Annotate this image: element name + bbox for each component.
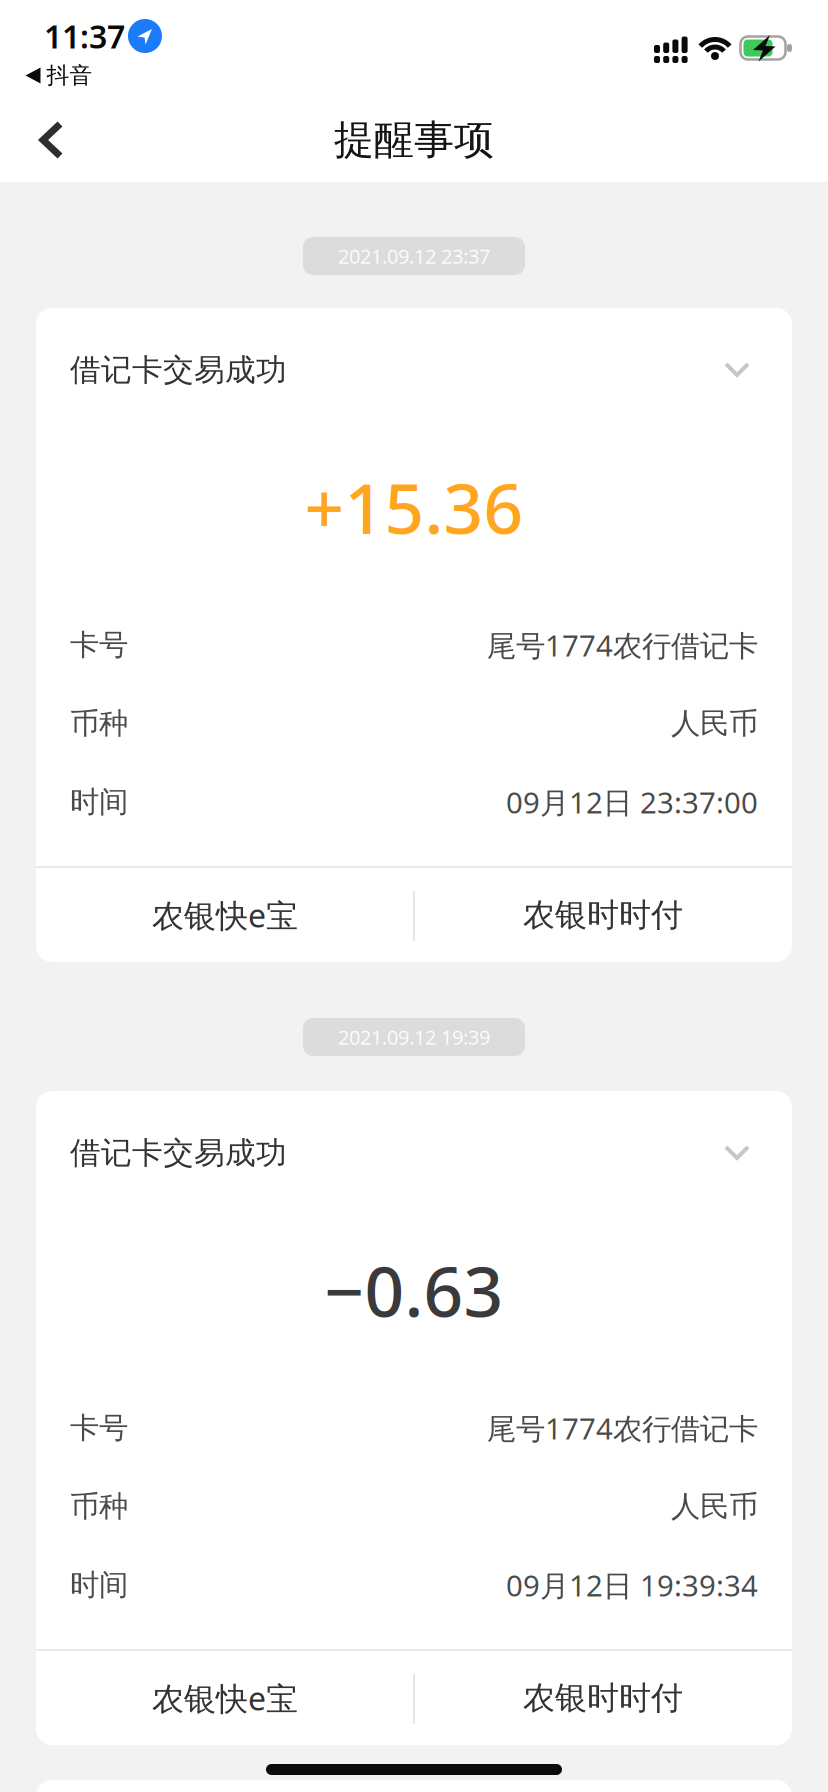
staticText: 2021.09.12 23:37	[338, 243, 490, 269]
staticText: 时间	[70, 1567, 128, 1603]
button[interactable]: 抖音	[25, 62, 92, 89]
button[interactable]: 农银快e宝	[36, 868, 413, 962]
staticText: 提醒事项	[334, 115, 494, 164]
button[interactable]	[724, 1145, 758, 1161]
staticText: 借记卡交易成功	[70, 1134, 287, 1172]
staticText: 卡号	[70, 627, 128, 663]
staticText: 时间	[70, 784, 128, 820]
staticText: −0.63	[324, 1244, 503, 1336]
staticText: +15.36	[304, 461, 523, 553]
staticText: 11:37	[44, 15, 125, 57]
button[interactable]: 农银快e宝	[36, 1651, 413, 1745]
staticText: 2021.09.12 19:39	[338, 1024, 490, 1050]
button[interactable]	[40, 122, 64, 158]
staticText: 卡号	[70, 1410, 128, 1446]
staticText: 尾号1774农行借记卡	[487, 625, 758, 664]
staticText: 人民币	[671, 705, 758, 741]
staticText: 农银时时付	[523, 1678, 683, 1718]
button[interactable]: 农银时时付	[414, 1651, 791, 1745]
staticText: 农银快e宝	[152, 894, 298, 936]
button[interactable]	[724, 362, 758, 378]
staticText: 尾号1774农行借记卡	[487, 1408, 758, 1447]
staticText: 农银快e宝	[152, 1677, 298, 1719]
staticText: 09月12日 23:37:00	[506, 782, 758, 821]
staticText: 农银时时付	[523, 895, 683, 935]
staticText: 币种	[70, 705, 128, 741]
staticText: 抖音	[46, 62, 92, 89]
staticText: 09月12日 19:39:34	[506, 1565, 758, 1604]
staticText: 人民币	[671, 1488, 758, 1524]
staticText: 币种	[70, 1488, 128, 1524]
button[interactable]: 农银时时付	[414, 868, 791, 962]
staticText: 借记卡交易成功	[70, 351, 287, 389]
